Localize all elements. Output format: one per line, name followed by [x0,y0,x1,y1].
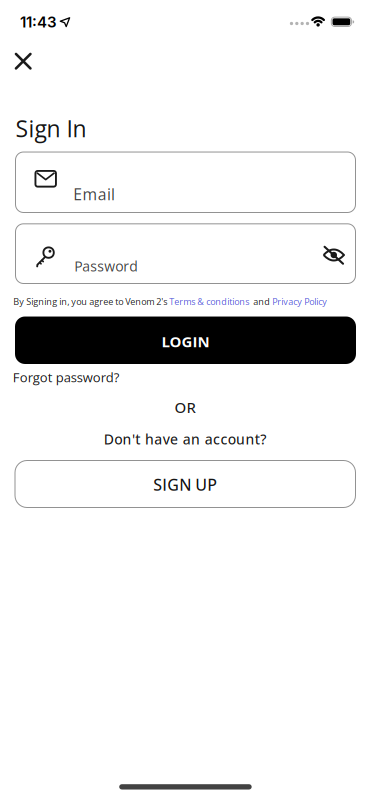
staticText: Email [73,183,115,205]
button[interactable]: Email [15,151,356,213]
staticText: By Signing in, you agree to Venom 2's [13,295,169,308]
staticText: Sign In [15,113,86,144]
button[interactable]: SIGN UP [14,460,356,508]
button[interactable]: Password [15,223,356,284]
staticText: Don't have an account? [104,429,266,449]
staticText: SIGN UP [153,474,217,495]
staticText: Forgot password? [13,368,120,386]
staticText: OR [174,397,195,417]
button[interactable]: Show password [319,241,349,268]
staticText: 11:43 [20,13,57,31]
staticText: and [249,295,272,308]
button[interactable]: Privacy Policy [272,295,327,308]
staticText: Privacy Policy [272,295,327,308]
button[interactable]: Forgot password? [13,368,120,386]
staticText: Password [74,256,138,276]
button[interactable]: Terms & conditions [169,295,249,308]
button[interactable]: Close [8,46,38,76]
button[interactable]: LOGIN [15,316,356,364]
staticText: Terms & conditions [169,295,249,308]
staticText: LOGIN [161,331,209,352]
